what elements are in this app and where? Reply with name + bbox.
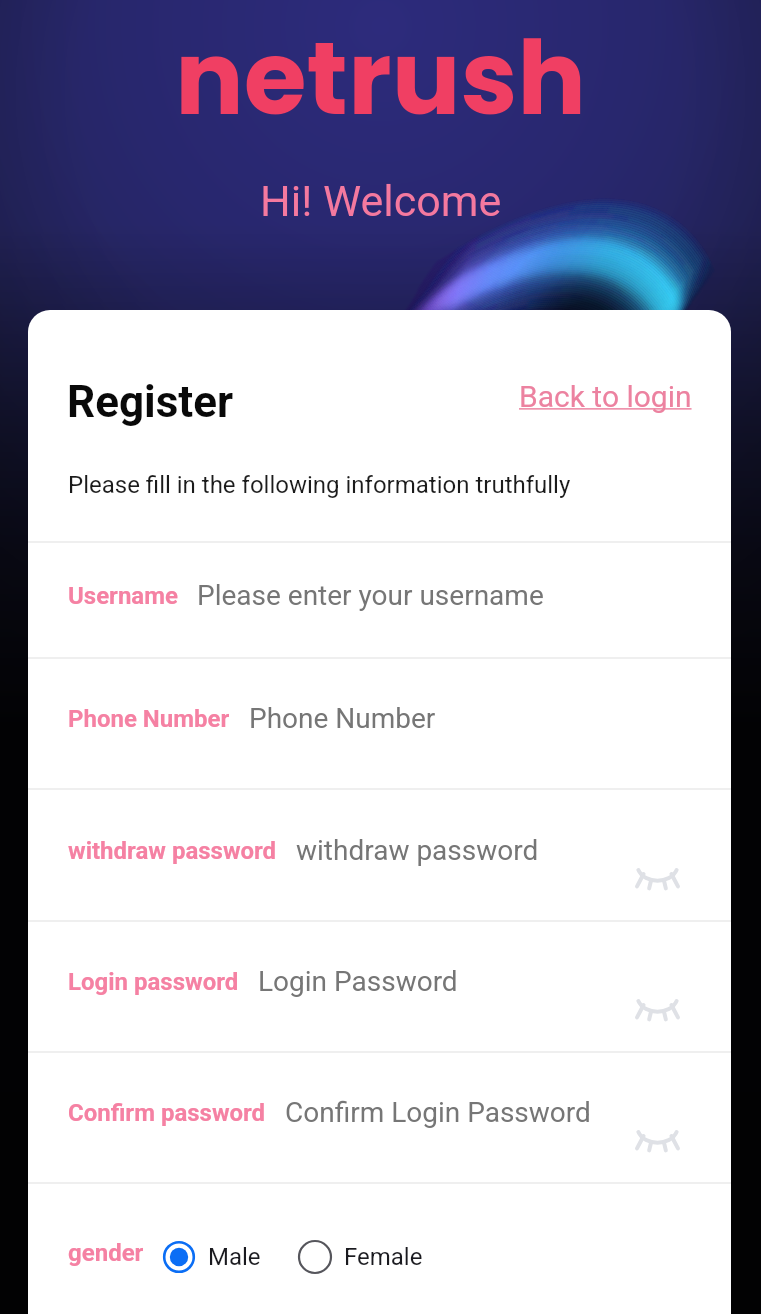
button[interactable]: Confirm password xyxy=(28,1051,731,1182)
button[interactable]: Back to login xyxy=(519,379,692,414)
staticText: withdraw password xyxy=(68,834,277,862)
button[interactable]: Username xyxy=(28,541,731,657)
staticText: Phone Number xyxy=(249,702,436,735)
staticText: Confirm password xyxy=(68,1099,266,1127)
button[interactable]: Toggle password visibility xyxy=(627,862,687,894)
staticText: Username xyxy=(68,579,178,607)
staticText: withdraw password xyxy=(296,834,539,867)
staticText: Please fill in the following information… xyxy=(68,471,571,499)
staticText: Login password xyxy=(68,965,239,993)
staticText: Back to login xyxy=(519,379,692,414)
staticText: Hi! Welcome xyxy=(260,176,502,226)
staticText: Confirm Login Password xyxy=(285,1096,591,1129)
staticText: Please enter your username xyxy=(197,579,544,612)
staticText: Login password xyxy=(68,968,239,996)
button[interactable]: Login password xyxy=(28,920,731,1051)
button[interactable]: Female xyxy=(298,1240,423,1274)
staticText: Login Password xyxy=(258,965,458,998)
staticText: withdraw password xyxy=(68,837,277,865)
staticText: netrush xyxy=(175,7,587,150)
staticText: Male xyxy=(208,1243,261,1271)
button[interactable]: Male xyxy=(163,1241,261,1273)
staticText: Username xyxy=(68,582,178,610)
staticText: gender xyxy=(68,1239,144,1267)
staticText: Confirm password xyxy=(68,1096,266,1124)
staticText: Phone Number xyxy=(68,705,230,733)
staticText: Female xyxy=(344,1243,423,1271)
staticText: Phone Number xyxy=(68,702,230,730)
button[interactable]: Phone Number xyxy=(28,657,731,788)
button[interactable]: Toggle password visibility xyxy=(627,993,687,1025)
staticText: Register xyxy=(67,376,234,428)
button[interactable]: Toggle password visibility xyxy=(627,1124,687,1156)
button[interactable]: withdraw password xyxy=(28,788,731,920)
